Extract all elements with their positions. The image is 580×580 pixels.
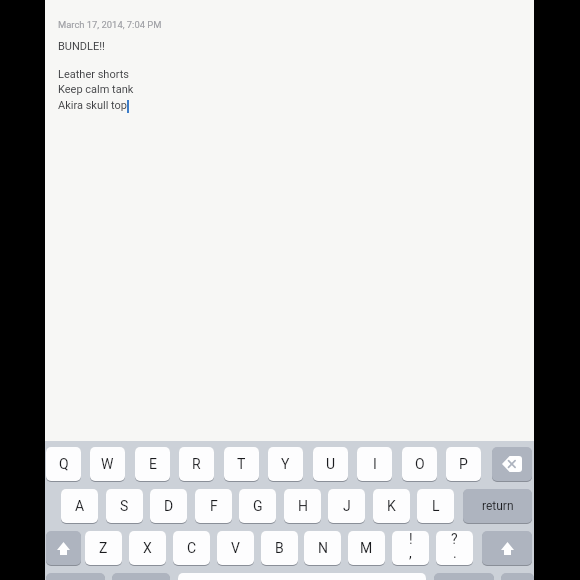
staticText: ! (409, 531, 413, 547)
button[interactable] (112, 573, 170, 580)
button[interactable]: Y (268, 447, 303, 481)
staticText: B (275, 540, 284, 556)
staticText: H (298, 498, 308, 514)
staticText: Q (59, 456, 69, 472)
button[interactable]: X (129, 531, 166, 565)
button[interactable]: P (446, 447, 481, 481)
button[interactable]: ? (436, 531, 473, 565)
button[interactable]: return (463, 489, 532, 523)
staticText: return (482, 499, 514, 513)
button[interactable]: R (179, 447, 214, 481)
staticText: C (187, 540, 197, 556)
staticText: T (237, 456, 246, 472)
button[interactable]: N (304, 531, 341, 565)
button[interactable]: Z (85, 531, 122, 565)
staticText: G (253, 498, 263, 514)
button[interactable]: G (239, 489, 276, 523)
button[interactable] (492, 447, 532, 481)
button[interactable]: V (217, 531, 254, 565)
button[interactable] (45, 0, 534, 580)
staticText: X (143, 540, 152, 556)
staticText: K (387, 498, 396, 514)
staticText: J (343, 498, 351, 514)
button[interactable]: U (313, 447, 348, 481)
staticText: R (192, 456, 201, 472)
staticText: N (318, 540, 328, 556)
button[interactable]: C (173, 531, 210, 565)
staticText: Keep calm tank (58, 83, 134, 96)
staticText: O (415, 456, 425, 472)
button[interactable]: D (150, 489, 187, 523)
staticText: L (432, 498, 440, 514)
staticText: U (326, 456, 336, 472)
staticText: A (75, 498, 85, 514)
staticText: P (459, 456, 468, 472)
staticText: D (164, 498, 174, 514)
button[interactable]: H (284, 489, 321, 523)
button[interactable]: B (261, 531, 298, 565)
staticText: Y (281, 456, 290, 472)
staticText: M (360, 540, 373, 556)
button[interactable]: K (373, 489, 410, 523)
button[interactable]: M (348, 531, 385, 565)
staticText: S (120, 498, 129, 514)
button[interactable]: Q (46, 447, 81, 481)
button[interactable]: L (417, 489, 454, 523)
button[interactable]: ! (392, 531, 429, 565)
staticText: Z (99, 540, 108, 556)
button[interactable]: T (224, 447, 259, 481)
staticText: W (101, 456, 114, 472)
button[interactable]: I (357, 447, 392, 481)
staticText: . (453, 545, 457, 561)
button[interactable]: E (135, 447, 170, 481)
button[interactable]: J (328, 489, 365, 523)
button[interactable] (46, 573, 105, 580)
button[interactable]: W (90, 447, 125, 481)
staticText: BUNDLE!! (58, 40, 105, 53)
button[interactable]: F (195, 489, 232, 523)
staticText: E (149, 456, 157, 472)
staticText: V (231, 540, 240, 556)
staticText: ? (451, 531, 458, 547)
button[interactable]: A (61, 489, 98, 523)
button[interactable] (482, 531, 532, 565)
staticText: F (210, 498, 218, 514)
button[interactable]: O (402, 447, 437, 481)
staticText: , (409, 545, 412, 561)
staticText: March 17, 2014, 7:04 PM (58, 19, 162, 30)
button[interactable] (434, 573, 494, 580)
button[interactable] (178, 573, 426, 580)
button[interactable] (501, 573, 534, 580)
button[interactable]: S (106, 489, 143, 523)
staticText: Leather shorts (58, 68, 129, 81)
staticText: I (373, 456, 377, 472)
button[interactable] (46, 531, 81, 565)
staticText: Akira skull top (58, 99, 127, 112)
